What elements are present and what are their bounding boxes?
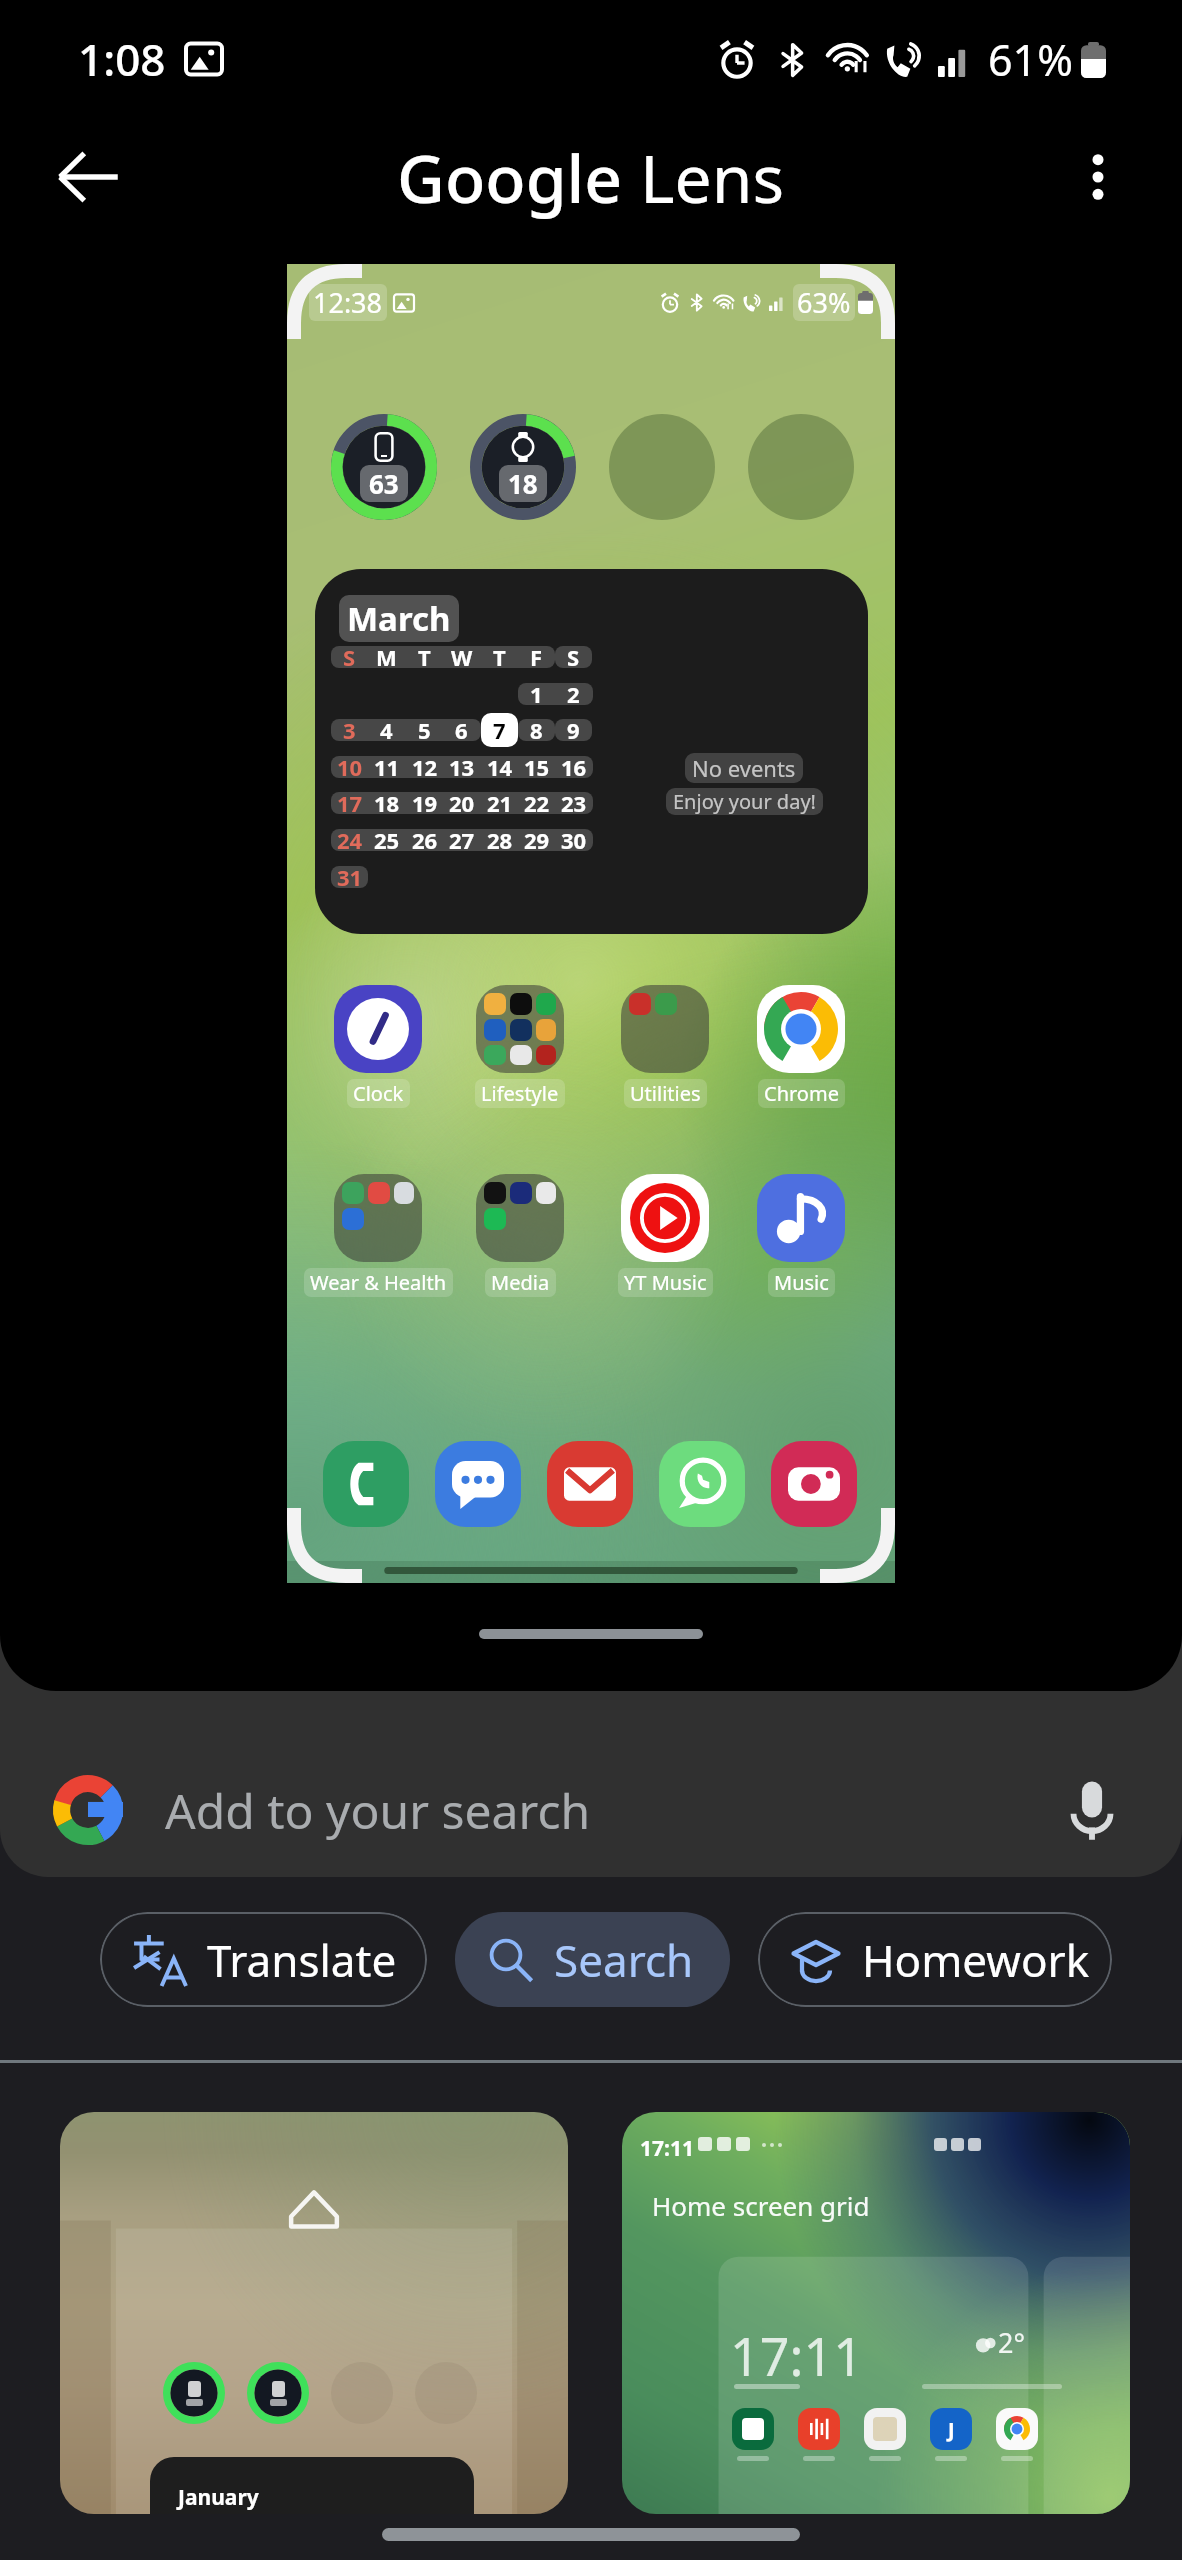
staticText: Clock — [353, 1080, 404, 1107]
staticText: 61% — [988, 30, 1073, 89]
staticText: 14 — [487, 752, 513, 782]
staticText: 8 — [530, 715, 543, 745]
staticText: 17 — [337, 788, 363, 818]
staticText: January — [178, 2483, 259, 2512]
staticText: 28 — [487, 825, 513, 855]
staticText: Search — [554, 1930, 694, 1990]
staticText: 26 — [412, 825, 438, 855]
staticText: March — [347, 596, 451, 641]
staticText: 27 — [449, 825, 475, 855]
staticText: 17:11 — [730, 2320, 863, 2391]
staticText: Lifestyle — [481, 1080, 559, 1107]
button[interactable]: Add to your search — [0, 1580, 1182, 1877]
staticText: S — [567, 642, 580, 672]
staticText: 12 — [412, 752, 438, 782]
button[interactable]: January — [60, 2112, 568, 2514]
staticText: 9 — [567, 715, 580, 745]
button[interactable]: Voice search — [1052, 1770, 1132, 1850]
button[interactable]: Captured screenshot — [287, 264, 895, 1583]
staticText: 63 — [369, 466, 399, 501]
staticText: F — [530, 642, 543, 672]
staticText: 3 — [343, 715, 356, 745]
button[interactable]: Back — [36, 125, 140, 229]
staticText: 22 — [524, 788, 550, 818]
staticText: T — [418, 642, 431, 672]
staticText: 18 — [374, 788, 400, 818]
staticText: 63% — [797, 284, 851, 321]
staticText: W — [451, 642, 473, 672]
staticText: Utilities — [630, 1080, 701, 1107]
staticText: 7 — [493, 715, 506, 745]
button[interactable]: Search — [455, 1912, 730, 2007]
staticText: 4 — [380, 715, 393, 745]
staticText: M — [376, 642, 397, 672]
staticText: Add to your search — [165, 1778, 591, 1843]
staticText: Media — [491, 1269, 550, 1296]
staticText: 2° — [998, 2324, 1025, 2361]
staticText: Google — [397, 132, 640, 222]
staticText: 11 — [374, 752, 400, 782]
staticText: Music — [774, 1269, 829, 1296]
staticText: 12:38 — [313, 284, 383, 321]
staticText: 18 — [508, 466, 538, 501]
staticText: 25 — [374, 825, 400, 855]
button[interactable]: 17:11 — [622, 2112, 1130, 2514]
staticText: 19 — [412, 788, 438, 818]
staticText: 16 — [561, 752, 587, 782]
staticText: T — [493, 642, 506, 672]
staticText: Wear & Health — [310, 1269, 447, 1296]
staticText: Enjoy your day! — [673, 788, 816, 815]
button[interactable]: More options — [1046, 125, 1150, 229]
staticText: S — [343, 642, 356, 672]
button[interactable]: Homework — [758, 1912, 1112, 2007]
staticText: Home screen grid — [652, 2188, 870, 2223]
button[interactable]: Translate — [100, 1912, 427, 2007]
staticText: Translate — [207, 1930, 397, 1990]
staticText: 24 — [337, 825, 363, 855]
staticText: 15 — [524, 752, 550, 782]
button[interactable]: Expand results — [479, 1629, 703, 1639]
staticText: 1 — [530, 679, 543, 709]
staticText: Homework — [862, 1930, 1090, 1990]
staticText: 20 — [449, 788, 475, 818]
staticText: 13 — [449, 752, 475, 782]
staticText: YT Music — [624, 1269, 707, 1296]
staticText: 31 — [337, 862, 363, 892]
staticText: 30 — [561, 825, 587, 855]
staticText: 29 — [524, 825, 550, 855]
staticText: Chrome — [764, 1080, 839, 1107]
staticText: 6 — [455, 715, 468, 745]
staticText: Lens — [640, 132, 785, 222]
staticText: J — [948, 2416, 955, 2443]
staticText: 21 — [487, 788, 513, 818]
staticText: No events — [692, 753, 796, 783]
staticText: 1:08 — [78, 29, 166, 89]
staticText: 5 — [418, 715, 431, 745]
staticText: 10 — [337, 752, 363, 782]
staticText: 2 — [567, 679, 580, 709]
staticText: 23 — [561, 788, 587, 818]
staticText: 17:11 — [640, 2134, 694, 2163]
